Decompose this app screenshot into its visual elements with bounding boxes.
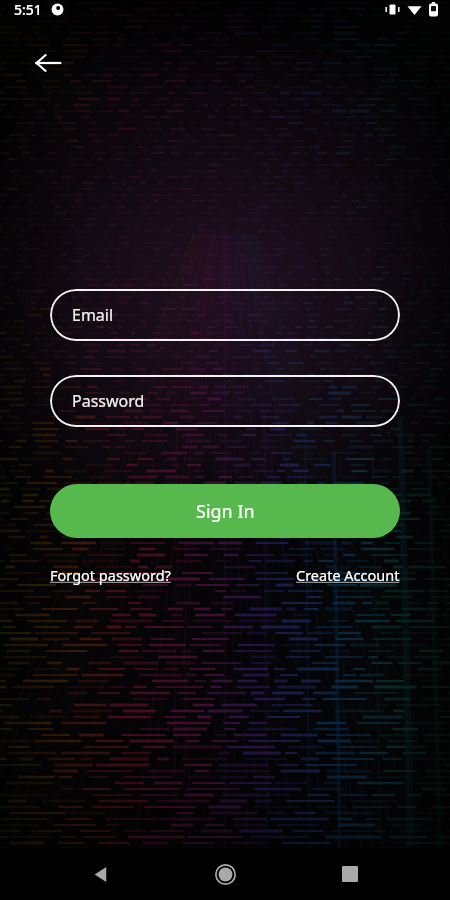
staticText: Email xyxy=(72,304,114,326)
button[interactable]: Sign In xyxy=(50,484,400,538)
button[interactable]: Home xyxy=(201,850,249,898)
staticText: Create Account xyxy=(296,565,400,585)
staticText: Password xyxy=(72,390,145,412)
button[interactable]: Recent apps xyxy=(326,850,374,898)
button[interactable]: Back xyxy=(77,850,125,898)
button[interactable]: Forgot password? xyxy=(50,563,171,587)
button[interactable]: Email xyxy=(50,289,400,341)
button[interactable]: Password xyxy=(50,375,400,427)
staticText: 5:51 xyxy=(14,0,42,19)
staticText: Forgot password? xyxy=(50,565,171,585)
button[interactable]: Create Account xyxy=(296,563,400,587)
button[interactable]: Back xyxy=(26,41,70,85)
staticText: Sign In xyxy=(196,499,255,524)
